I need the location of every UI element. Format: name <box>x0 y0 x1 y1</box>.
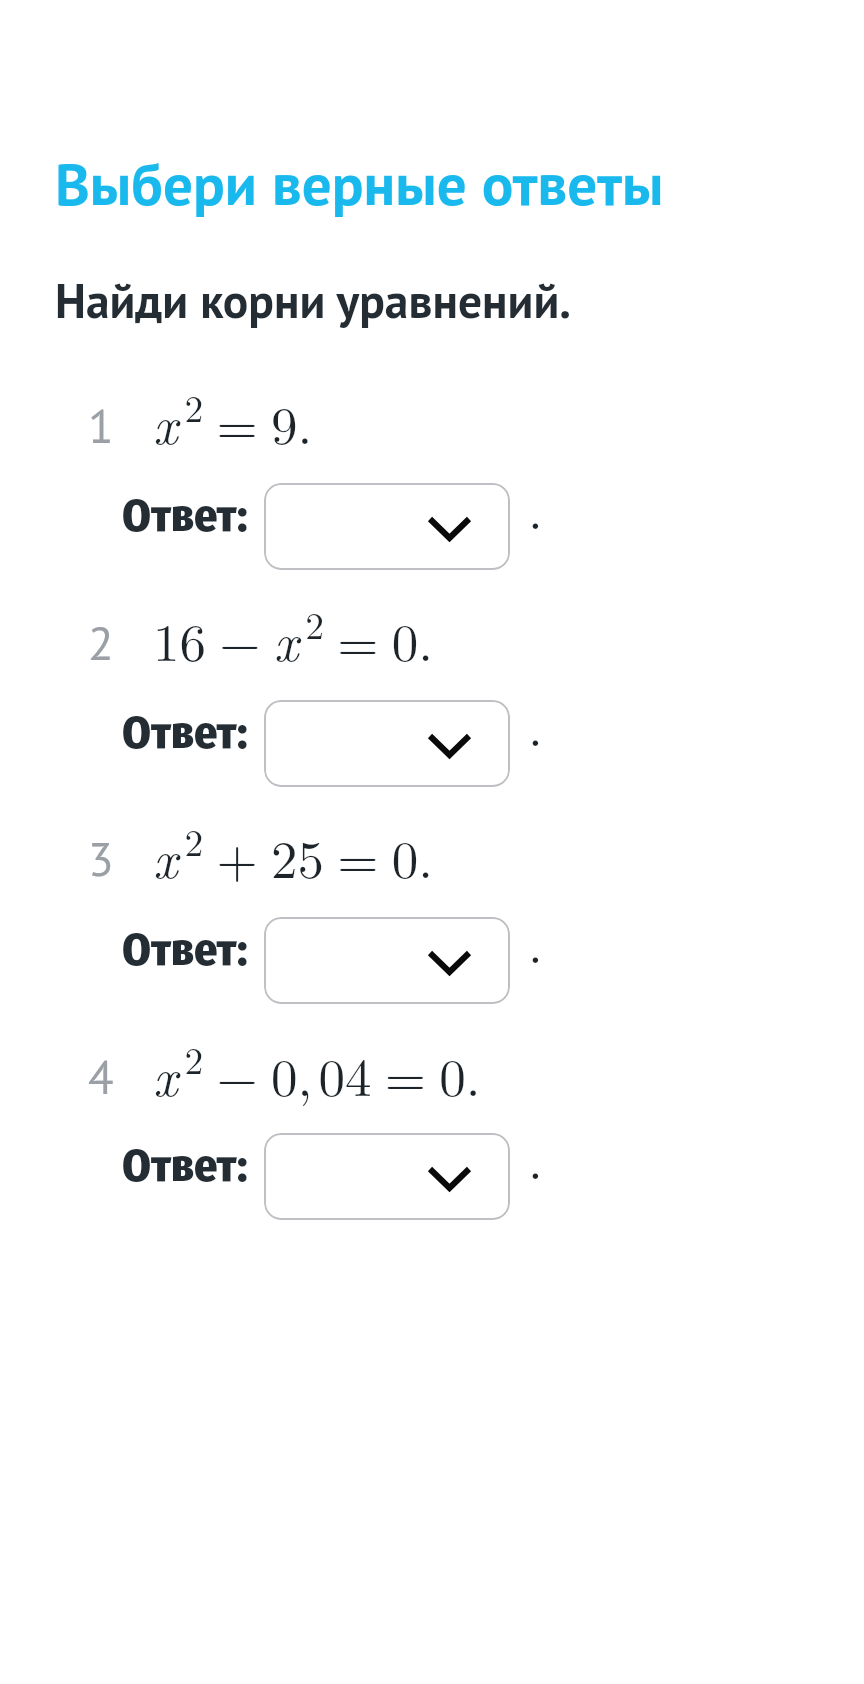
staticText: x 2 = 9. <box>153 380 313 460</box>
staticText: Найди корни уравнений. <box>55 270 571 331</box>
staticText: . <box>528 686 543 761</box>
staticText: Ответ: <box>122 922 248 977</box>
button[interactable]: Выбрать ответ <box>264 483 510 570</box>
staticText: 4 <box>88 1046 114 1107</box>
staticText: Ответ: <box>122 488 248 543</box>
staticText: . <box>528 903 543 978</box>
button[interactable]: Выбрать ответ <box>264 917 510 1004</box>
staticText: Ответ: <box>122 705 248 760</box>
staticText: x 2 + 25 = 0. <box>153 814 433 894</box>
staticText: Выбери верные ответы <box>55 145 664 221</box>
button[interactable]: Выбрать ответ <box>264 700 510 787</box>
staticText: . <box>528 469 543 544</box>
staticText: Ответ: <box>122 1138 248 1193</box>
staticText: 3 <box>88 828 114 889</box>
staticText: 1 <box>88 395 114 456</box>
button[interactable]: Выбрать ответ <box>264 1133 510 1220</box>
staticText: 2 <box>88 612 114 673</box>
staticText: x 2 − 0, 04 = 0. <box>153 1032 481 1112</box>
staticText: . <box>528 1119 543 1194</box>
staticText: 16 − x 2 = 0. <box>153 597 433 677</box>
